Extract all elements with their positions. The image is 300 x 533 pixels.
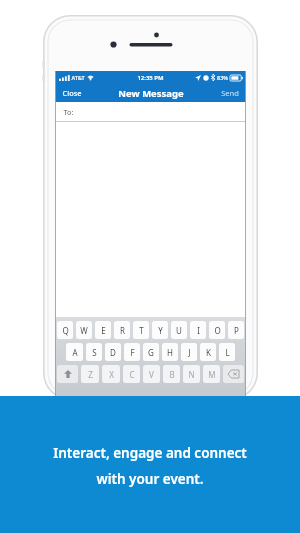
button[interactable]: C	[123, 365, 140, 383]
button[interactable]: P	[228, 321, 244, 339]
staticText: Send	[221, 88, 239, 98]
staticText: O	[214, 325, 221, 336]
button[interactable]: I	[190, 321, 206, 339]
button[interactable]: Q	[57, 321, 73, 339]
staticText: I	[197, 325, 200, 336]
staticText: Interact, engage and connect	[53, 444, 247, 462]
staticText: 12:35 PM	[137, 74, 164, 82]
button[interactable]: X	[102, 365, 120, 383]
staticText: C	[129, 369, 135, 380]
button[interactable]: K	[200, 343, 216, 361]
button[interactable]: W	[76, 321, 92, 339]
button[interactable]: D	[105, 343, 121, 361]
button[interactable]: J	[181, 343, 197, 361]
button[interactable]: V	[143, 365, 160, 383]
staticText: To:	[63, 107, 74, 117]
button[interactable]: S	[86, 343, 102, 361]
button[interactable]: M	[203, 365, 220, 383]
staticText: S	[92, 347, 97, 358]
staticText: Close	[62, 88, 82, 98]
staticText: W	[80, 325, 88, 336]
staticText: K	[206, 347, 211, 358]
staticText: X	[109, 369, 114, 380]
staticText: A	[72, 347, 78, 358]
button[interactable]: A	[66, 343, 83, 361]
staticText: J	[188, 347, 191, 358]
staticText: L	[225, 347, 230, 358]
button[interactable]: H	[162, 343, 178, 361]
staticText: N	[188, 369, 195, 380]
staticText: H	[167, 347, 173, 358]
staticText: P	[234, 325, 239, 336]
button[interactable]: To:	[55, 102, 246, 122]
staticText: AT&T	[71, 74, 85, 81]
button[interactable]: G	[143, 343, 159, 361]
button[interactable]: R	[114, 321, 130, 339]
button[interactable]: F	[124, 343, 140, 361]
button[interactable]: Backspace	[223, 365, 244, 383]
button[interactable]: O	[209, 321, 225, 339]
staticText: T	[139, 325, 144, 336]
button[interactable]: L	[219, 343, 235, 361]
staticText: with your event.	[96, 470, 204, 488]
staticText: V	[149, 369, 154, 380]
staticText: Z	[88, 369, 93, 380]
button[interactable]: U	[171, 321, 187, 339]
staticText: 83%	[217, 74, 228, 81]
button[interactable]: Y	[152, 321, 168, 339]
staticText: U	[176, 325, 182, 336]
staticText: R	[120, 325, 125, 336]
button[interactable]: Close	[55, 84, 89, 102]
staticText: M	[208, 369, 216, 380]
staticText: F	[130, 347, 135, 358]
button[interactable]: E	[95, 321, 111, 339]
staticText: E	[101, 325, 106, 336]
staticText: B	[169, 369, 175, 380]
staticText: New Message	[118, 87, 184, 100]
button[interactable]: B	[163, 365, 180, 383]
staticText: Q	[62, 325, 69, 336]
button[interactable]: Send	[214, 84, 246, 102]
button[interactable]: Z	[81, 365, 99, 383]
staticText: G	[148, 347, 154, 358]
staticText: D	[110, 347, 116, 358]
button[interactable]: Shift	[57, 365, 78, 383]
button[interactable]: T	[133, 321, 149, 339]
staticText: Y	[158, 325, 163, 336]
button[interactable]: N	[183, 365, 200, 383]
